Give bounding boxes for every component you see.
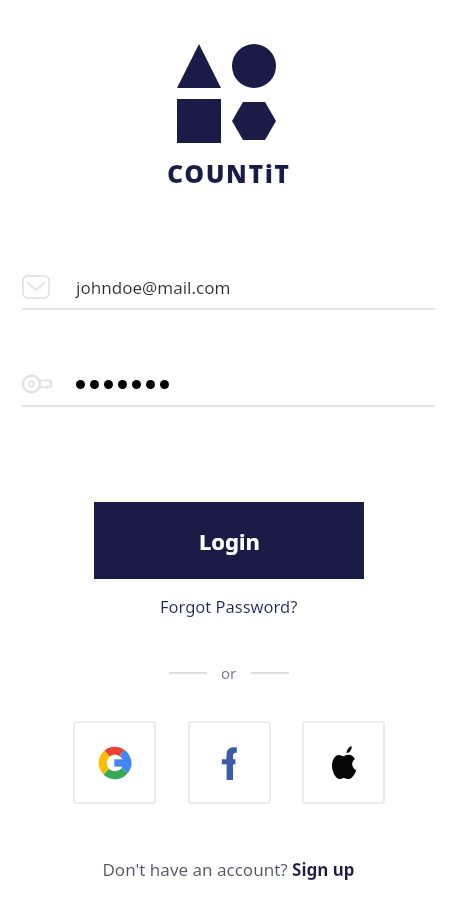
staticText: COUNTiT	[167, 156, 291, 190]
button[interactable]: johndoe@mail.com	[22, 266, 435, 308]
staticText: johndoe@mail.com	[76, 276, 231, 299]
button[interactable]	[22, 363, 435, 405]
button[interactable]: Sign in with Facebook	[188, 721, 271, 804]
staticText: Login	[199, 526, 260, 556]
staticText: Forgot Password?	[160, 595, 298, 617]
staticText: or	[221, 663, 237, 683]
staticText: Don't have an account? Sign up	[102, 858, 355, 881]
button[interactable]: Forgot Password?	[150, 591, 308, 621]
button[interactable]: Login	[94, 502, 364, 579]
button[interactable]: Sign in with Apple	[302, 721, 385, 804]
button[interactable]: Sign in with Google	[73, 721, 156, 804]
button[interactable]: Don't have an account? Sign up	[92, 854, 365, 885]
